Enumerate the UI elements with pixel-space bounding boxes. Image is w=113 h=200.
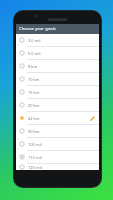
button[interactable]: Select goal <box>16 73 99 86</box>
other: Select goal <box>19 141 25 147</box>
staticText: 5.0 mil <box>28 51 96 56</box>
staticText: 120 mil <box>28 165 96 170</box>
button[interactable]: Select goal <box>16 138 99 151</box>
button[interactable]: Select goal <box>16 151 99 164</box>
staticText: 110 mil <box>28 155 96 160</box>
other: Selected goal <box>19 115 25 121</box>
button[interactable]: Select goal <box>16 60 99 73</box>
button[interactable]: Choose your goals <box>16 24 99 34</box>
other: Select goal <box>19 76 25 82</box>
other: Select goal <box>19 128 25 134</box>
staticText: 8 km <box>28 64 96 69</box>
other: Select goal <box>19 154 25 160</box>
button[interactable]: Select goal <box>16 86 99 99</box>
button[interactable]: Selected goal <box>16 112 99 125</box>
button[interactable]: Select goal <box>16 125 99 138</box>
button[interactable]: Select goal <box>16 47 99 60</box>
staticText: 10 km <box>28 77 96 82</box>
other: Select goal <box>19 164 25 170</box>
other: Select goal <box>19 63 25 69</box>
other: Select goal <box>19 102 25 108</box>
staticText: Choose your goals <box>19 26 56 32</box>
button[interactable]: Select goal <box>16 164 99 170</box>
button[interactable]: Select goal <box>16 34 99 47</box>
staticText: 15 km <box>28 90 96 95</box>
staticText: 100 mil <box>28 142 96 147</box>
staticText: 20 km <box>28 103 96 108</box>
button[interactable]: Select goal <box>16 99 99 112</box>
staticText: 42 km <box>28 116 88 121</box>
other: Select goal <box>19 37 25 43</box>
staticText: 50 km <box>28 129 96 134</box>
other: Select goal <box>19 50 25 56</box>
button[interactable]: Edit goal <box>88 114 96 122</box>
other: Select goal <box>19 89 25 95</box>
staticText: 3.0 mil <box>28 38 96 43</box>
